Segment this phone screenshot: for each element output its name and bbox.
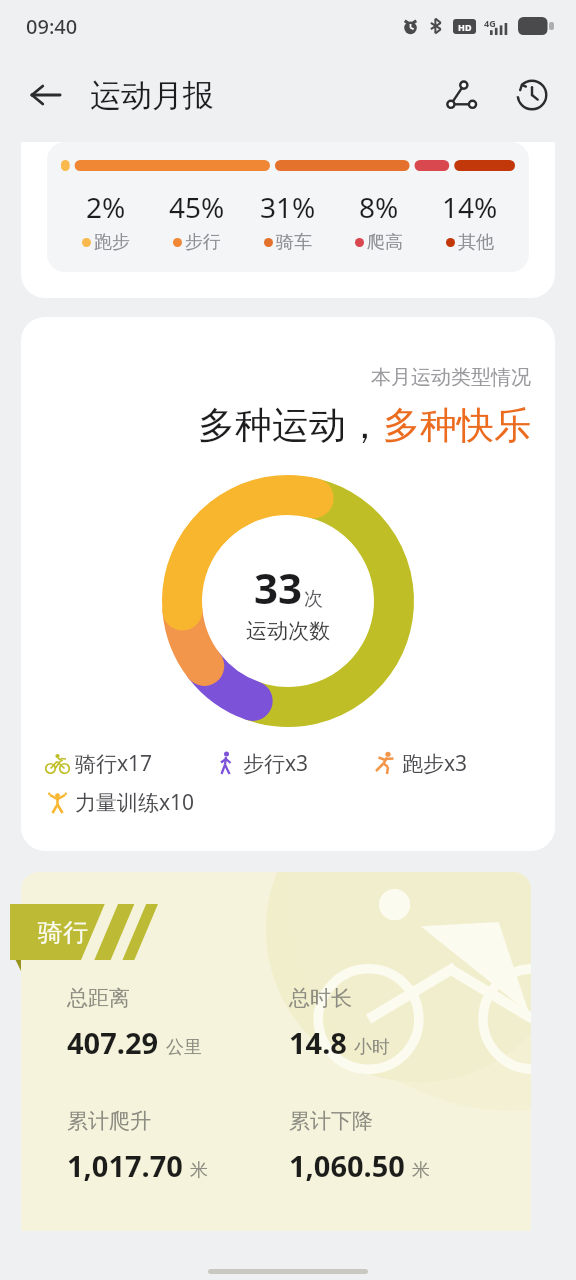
staticText: 公里	[166, 1036, 202, 1059]
staticText: 多种快乐	[383, 402, 531, 449]
staticText: 31%	[260, 188, 316, 226]
staticText: 407.29	[67, 1023, 159, 1062]
staticText: 跑步	[94, 231, 130, 254]
staticText: 33	[254, 559, 303, 616]
staticText: 次	[304, 587, 323, 611]
staticText: 米	[412, 1159, 430, 1182]
staticText: 14%	[442, 188, 498, 226]
staticText: 4G	[484, 17, 496, 29]
staticText: 本月运动类型情况	[45, 365, 531, 390]
staticText: 力量训练x10	[75, 788, 195, 817]
staticText: 多种运动，	[198, 402, 383, 449]
button[interactable]: Back	[18, 67, 74, 123]
staticText: 骑行x17	[75, 749, 153, 778]
button[interactable]: 骑行x17	[45, 749, 213, 778]
staticText: 小时	[354, 1036, 390, 1059]
staticText: 总时长	[289, 985, 352, 1011]
button[interactable]: 步行x3	[213, 749, 372, 778]
button[interactable]: History	[504, 67, 560, 123]
button[interactable]: 本月运动类型情况	[21, 317, 555, 851]
staticText: 运动次数	[246, 618, 330, 644]
staticText: 爬高	[367, 231, 403, 254]
staticText: 45%	[169, 188, 225, 226]
staticText: 米	[190, 1159, 208, 1182]
staticText: 运动月报	[90, 76, 214, 115]
button[interactable]: 力量训练x10	[45, 788, 212, 817]
button[interactable]: 总距离	[21, 872, 531, 1231]
staticText: 跑步x3	[402, 749, 468, 778]
staticText: 步行x3	[243, 749, 309, 778]
staticText: 累计爬升	[67, 1108, 151, 1134]
staticText: 骑行	[38, 917, 88, 948]
staticText: 其他	[458, 231, 494, 254]
staticText: 09:40	[26, 13, 78, 40]
staticText: HD	[458, 21, 472, 33]
staticText: 14.8	[289, 1023, 347, 1062]
button[interactable]: 跑步x3	[372, 749, 531, 778]
staticText: 8%	[359, 188, 399, 226]
staticText: 骑车	[276, 231, 312, 254]
staticText: 总距离	[67, 985, 130, 1011]
staticText: 累计下降	[289, 1108, 373, 1134]
staticText: 2%	[86, 188, 126, 226]
staticText: 步行	[185, 231, 221, 254]
button[interactable]: 2%	[21, 142, 555, 298]
button[interactable]: Share	[434, 67, 490, 123]
staticText: 1,017.70	[67, 1146, 183, 1185]
staticText: 1,060.50	[289, 1146, 405, 1185]
